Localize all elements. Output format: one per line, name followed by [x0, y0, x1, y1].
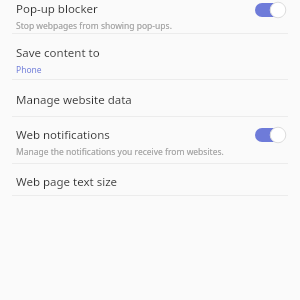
button[interactable]: Web page text size: [0, 164, 300, 195]
button[interactable]: Pop-up blocker toggle: [253, 0, 287, 20]
staticText: Stop webpages from showing pop-ups.: [16, 20, 172, 32]
staticText: Web notifications: [16, 127, 110, 143]
staticText: Pop-up blocker: [16, 1, 98, 17]
button[interactable]: Web notifications: [0, 117, 300, 163]
staticText: Save content to: [16, 45, 100, 61]
staticText: Web page text size: [16, 174, 118, 190]
staticText: Manage the notifications you receive fro…: [16, 146, 224, 158]
button[interactable]: Save content to: [0, 38, 300, 79]
button[interactable]: Pop-up blocker: [0, 0, 300, 34]
button[interactable]: Web notifications toggle: [253, 125, 287, 145]
staticText: Phone: [16, 64, 42, 76]
staticText: Manage website data: [16, 92, 132, 108]
button[interactable]: Manage website data: [0, 80, 300, 116]
